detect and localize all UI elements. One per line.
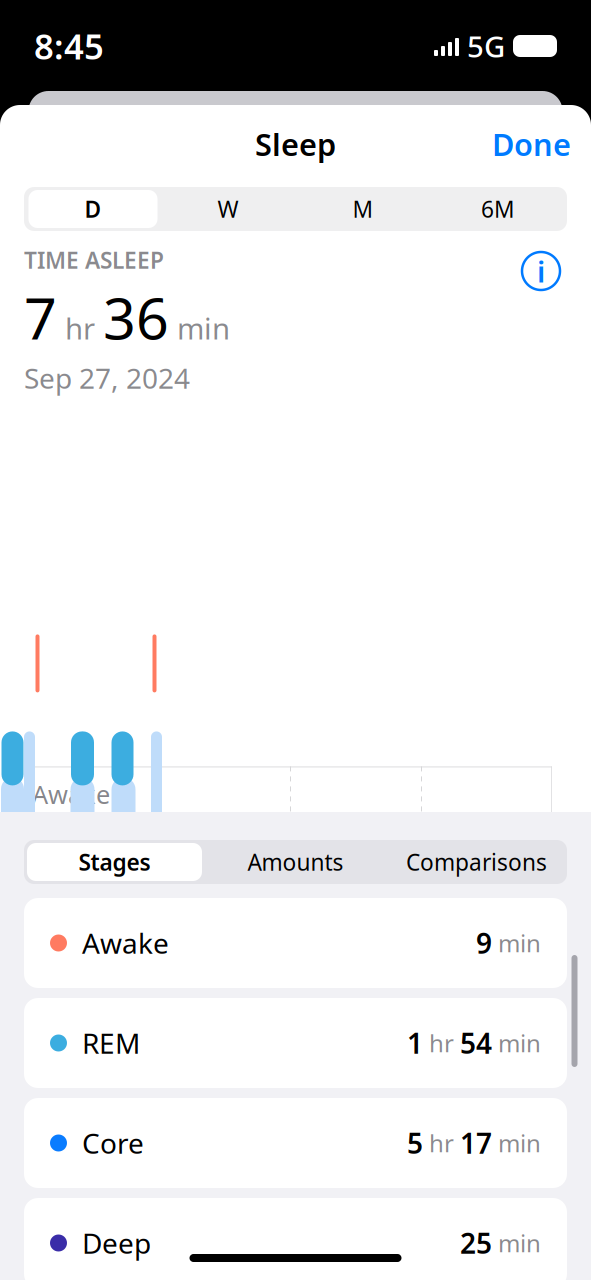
button[interactable]: Done (472, 114, 591, 174)
staticText: W (217, 194, 238, 224)
staticText: hr (423, 1127, 460, 1159)
staticText: hr (423, 1027, 460, 1059)
staticText: hr (57, 309, 103, 348)
staticText: 17 (460, 1124, 492, 1162)
staticText: min (169, 309, 230, 348)
staticText: 5 (407, 1124, 423, 1162)
staticText: 9 (476, 924, 492, 962)
staticText: 54 (460, 1024, 492, 1062)
staticText: 10 PM (26, 1170, 99, 1204)
staticText: Comparisons (406, 847, 547, 877)
staticText: M (352, 194, 373, 224)
button[interactable]: Deep (24, 1198, 567, 1280)
button[interactable]: D (25, 187, 160, 231)
button[interactable]: Comparisons (386, 840, 567, 884)
staticText: 36 (103, 279, 169, 355)
staticText: REM (75, 1024, 140, 1062)
staticText: i (537, 251, 545, 290)
staticText: 25 (460, 1224, 492, 1262)
button[interactable]: Core (24, 1098, 567, 1188)
staticText: 7 AM (423, 1170, 483, 1204)
button[interactable]: W (160, 187, 295, 231)
staticText: 7 (24, 279, 57, 355)
staticText: 4 AM (292, 1170, 352, 1204)
staticText: Done (492, 124, 571, 164)
staticText: Awake (32, 777, 110, 811)
staticText: 6M (481, 194, 515, 224)
staticText: Core (75, 1124, 144, 1162)
staticText: REM (32, 877, 85, 911)
staticText: D (84, 194, 101, 224)
button[interactable]: Stages (24, 840, 205, 884)
staticText: Amounts (247, 847, 343, 877)
staticText: Core (32, 977, 87, 1011)
staticText: min (492, 1127, 541, 1159)
staticText: min (492, 927, 541, 959)
staticText: 5G (459, 26, 505, 65)
staticText: 1 (407, 1024, 423, 1062)
staticText: 1 AM (161, 1170, 221, 1204)
button[interactable]: Awake (24, 898, 567, 988)
staticText: Deep (32, 1077, 94, 1111)
staticText: Stages (78, 847, 150, 877)
button[interactable]: 6M (430, 187, 565, 231)
staticText: Deep (75, 1224, 151, 1262)
staticText: Sleep (255, 124, 336, 164)
button[interactable]: About time asleep (515, 245, 567, 297)
button[interactable]: Amounts (205, 840, 386, 884)
button[interactable]: M (295, 187, 430, 231)
staticText: min (492, 1227, 541, 1259)
button[interactable]: REM (24, 998, 567, 1088)
staticText: TIME ASLEEP (24, 245, 164, 275)
staticText: Sep 27, 2024 (24, 359, 190, 396)
staticText: 8:45 (34, 23, 104, 69)
staticText: min (492, 1027, 541, 1059)
staticText: Awake (75, 924, 169, 962)
